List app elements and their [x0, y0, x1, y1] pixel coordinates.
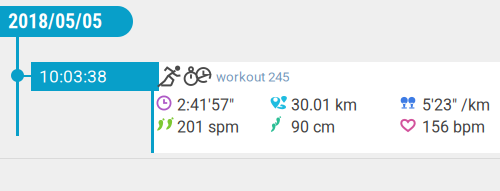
button[interactable]: 2018/05/05 [0, 6, 133, 37]
staticText: 30.01 km [291, 96, 357, 114]
staticText: 201 spm [177, 118, 239, 136]
staticText: workout 245 [216, 69, 289, 85]
staticText: 5'23" /km [422, 96, 490, 114]
staticText: 10:03:38 [39, 66, 107, 87]
staticText: 90 cm [291, 118, 335, 136]
staticText: 156 bpm [422, 118, 485, 136]
staticText: 2:41'57" [177, 96, 234, 114]
button[interactable]: 10:03:38 [31, 62, 159, 91]
staticText: 2018/05/05 [8, 10, 102, 33]
